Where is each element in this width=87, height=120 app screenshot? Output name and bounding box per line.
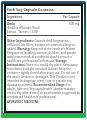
staticText: AYURVEDIC MEDICINE	[7, 100, 39, 104]
staticText: 500 mg	[69, 22, 80, 26]
staticText: (Emblica officinalis (Fruit)	[7, 26, 40, 30]
staticText: Ingredient	[7, 15, 63, 19]
staticText: Extract - Tannins > 20%)	[7, 30, 38, 34]
staticText: Per Capsule	[63, 15, 80, 19]
staticText: Each Veg Capsule Contains:	[7, 7, 55, 12]
staticText: Amla	[7, 22, 15, 26]
staticText: Other Ingredients: Capsule shell (vegeta…	[7, 39, 80, 99]
